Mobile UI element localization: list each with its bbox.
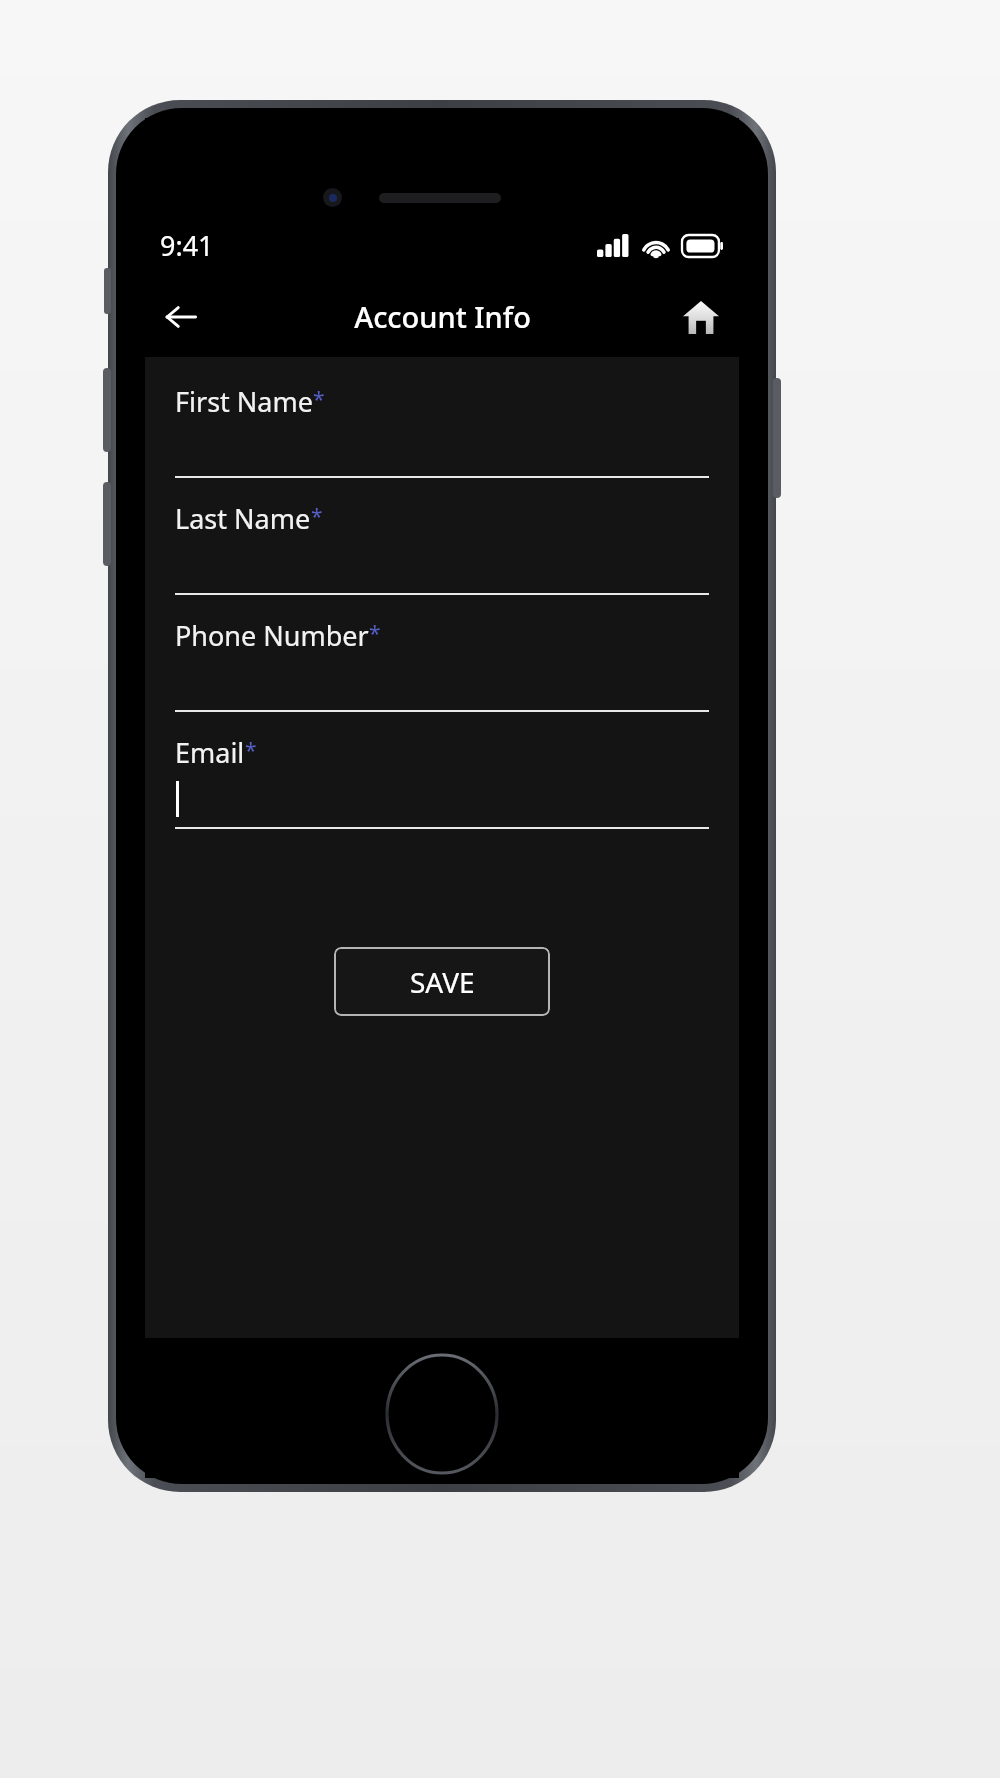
button[interactable]: Last Name <box>175 500 709 617</box>
staticText: * <box>369 619 381 648</box>
staticText: First Name <box>175 383 313 420</box>
staticText: * <box>313 385 325 414</box>
staticText: Phone Number <box>175 617 369 654</box>
staticText: Last Name <box>175 500 311 537</box>
button[interactable]: First Name <box>175 383 709 500</box>
button[interactable]: Phone Number <box>175 617 709 734</box>
button[interactable]: Home button <box>387 1355 497 1473</box>
staticText: Account Info <box>354 297 531 336</box>
staticText: Email <box>175 734 245 771</box>
button[interactable]: Back <box>153 289 209 345</box>
staticText: 9:41 <box>160 227 214 264</box>
staticText: SAVE <box>410 963 475 1001</box>
button[interactable]: Email <box>175 734 709 851</box>
staticText: * <box>245 736 257 765</box>
staticText: * <box>311 502 323 531</box>
button[interactable]: Home <box>673 289 729 345</box>
button[interactable]: SAVE <box>334 947 550 1016</box>
